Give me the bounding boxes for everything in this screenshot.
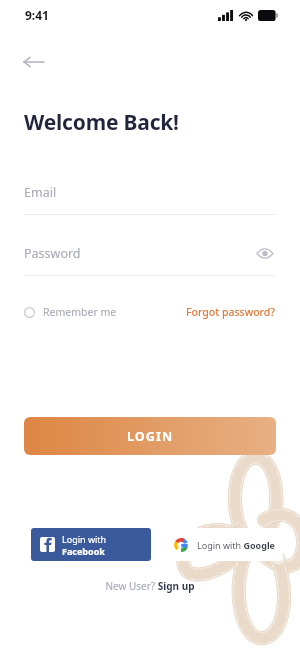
button[interactable]: Remember me	[24, 305, 117, 319]
staticText: Remember me	[43, 305, 117, 319]
button[interactable]: New User? Sign up	[105, 579, 195, 593]
button[interactable]: Password	[24, 242, 276, 276]
button[interactable]: Login with Google	[163, 528, 283, 561]
button[interactable]: Back	[16, 44, 52, 80]
staticText: Login with Facebook	[62, 533, 151, 557]
staticText: Email	[24, 184, 57, 201]
button[interactable]: LOGIN	[24, 417, 276, 455]
staticText: Welcome Back!	[24, 108, 179, 137]
button[interactable]: Email	[24, 181, 276, 215]
button[interactable]: Login with Facebook	[31, 528, 151, 561]
staticText: 9:41	[25, 7, 49, 23]
staticText: New User? Sign up	[105, 579, 195, 593]
staticText: LOGIN	[127, 428, 174, 445]
button[interactable]: Forgot password?	[186, 305, 276, 319]
staticText: Password	[24, 245, 81, 262]
staticText: Login with Google	[197, 539, 275, 551]
staticText: Forgot password?	[186, 305, 276, 319]
button[interactable]: Show password	[254, 242, 276, 264]
